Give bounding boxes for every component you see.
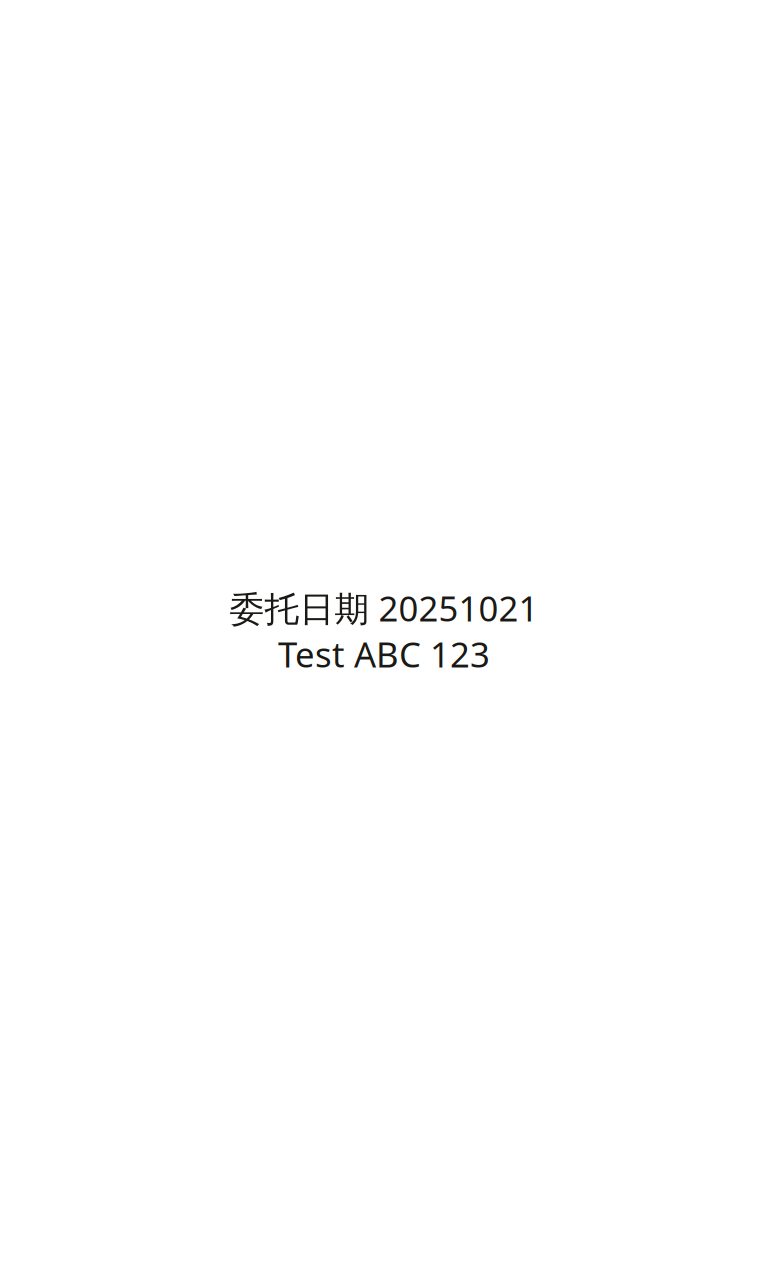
staticText: Test ABC 123 (278, 631, 490, 677)
staticText: 委托日期 20251021 (229, 585, 538, 631)
